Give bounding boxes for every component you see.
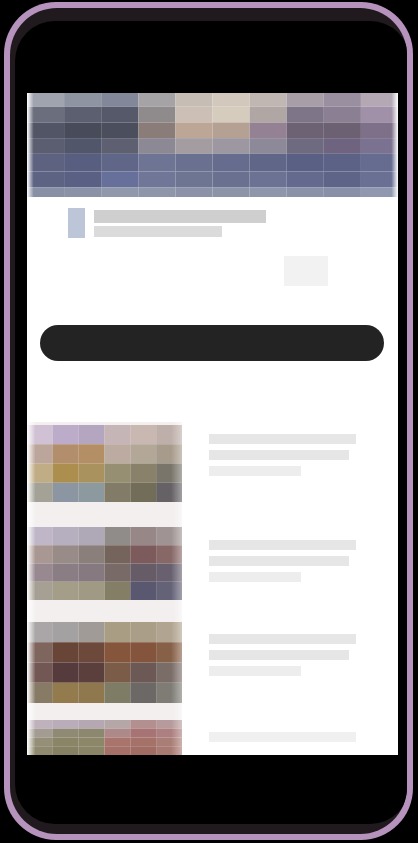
button[interactable] bbox=[27, 425, 398, 506]
button[interactable] bbox=[27, 720, 398, 755]
button[interactable] bbox=[40, 325, 384, 361]
button[interactable] bbox=[27, 622, 398, 707]
button[interactable] bbox=[27, 527, 398, 604]
